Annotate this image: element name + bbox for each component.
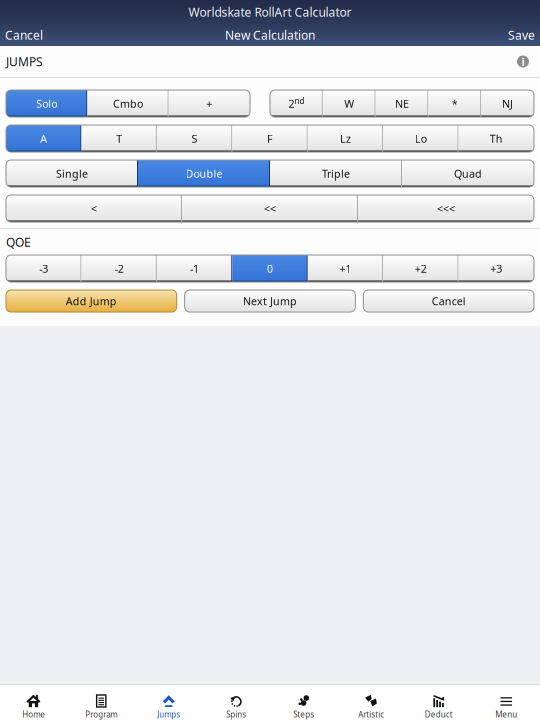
button[interactable]: Quad [402,160,534,187]
staticText: Save [508,27,535,43]
staticText: +3 [490,261,502,276]
button[interactable]: Add Jump [6,290,177,312]
staticText: S [192,131,198,146]
button[interactable]: Cmbo [87,90,169,117]
staticText: Quad [454,166,482,181]
staticText: W [344,96,354,111]
button[interactable]: Triple [270,160,402,187]
button[interactable]: Lo [383,125,458,152]
button[interactable]: T [81,125,157,152]
button[interactable]: Single [6,160,138,187]
button[interactable]: Lz [308,125,383,152]
button[interactable]: 2 [270,90,323,117]
staticText: -1 [190,261,199,276]
staticText: Lo [415,131,427,146]
staticText: Cmbo [113,96,143,111]
staticText: 2 [288,96,294,111]
staticText: +1 [339,261,351,276]
button[interactable]: Spins [202,685,270,720]
button[interactable]: 0 [232,255,308,282]
button[interactable]: <<< [358,195,534,222]
staticText: <<< [437,201,455,216]
staticText: Lz [340,131,351,146]
staticText: F [267,131,273,146]
staticText: Home [22,709,45,720]
button[interactable]: S [157,125,232,152]
button[interactable]: Program [67,685,135,720]
staticText: Jumps [157,709,180,720]
button[interactable]: Home [0,685,67,720]
staticText: Spins [226,709,246,720]
staticText: Triple [322,166,350,181]
staticText: Artistic [358,709,384,720]
button[interactable]: Cancel [0,25,48,45]
staticText: Steps [293,709,314,720]
staticText: nd [294,96,304,106]
staticText: Deduct [425,709,453,720]
staticText: A [40,131,47,146]
button[interactable]: NJ [481,90,534,117]
button[interactable]: Next Jump [185,290,355,312]
button[interactable]: Information [512,50,534,72]
button[interactable]: * [428,90,481,117]
button[interactable]: Cancel [363,290,534,312]
staticText: * [452,96,458,111]
button[interactable]: W [323,90,376,117]
staticText: -2 [115,261,124,276]
button[interactable]: Jumps [135,685,202,720]
button[interactable]: +3 [459,255,534,282]
button[interactable]: +1 [308,255,383,282]
button[interactable]: NE [376,90,428,117]
button[interactable]: + [169,90,250,117]
button[interactable]: Save [503,25,540,45]
button[interactable]: Menu [472,685,540,720]
staticText: < [91,201,97,216]
staticText: T [116,131,122,146]
staticText: NE [395,96,409,111]
staticText: Single [56,166,88,181]
staticText: NJ [502,96,513,111]
staticText: -3 [39,261,48,276]
staticText: << [264,201,276,216]
button[interactable]: Artistic [337,685,405,720]
staticText: 0 [267,261,273,276]
button[interactable]: -1 [157,255,232,282]
staticText: + [206,96,212,111]
staticText: Next Jump [243,294,297,308]
staticText: New Calculation [225,27,315,43]
button[interactable]: < [6,195,182,222]
staticText: Cancel [432,294,466,308]
button[interactable]: << [182,195,358,222]
button[interactable]: Steps [270,685,337,720]
staticText: Program [85,709,117,720]
button[interactable]: -2 [81,255,157,282]
staticText: Worldskate RollArt Calculator [188,4,351,20]
button[interactable]: +2 [383,255,458,282]
button[interactable]: Deduct [405,685,472,720]
staticText: i [521,54,524,69]
button[interactable]: -3 [6,255,81,282]
button[interactable]: F [232,125,308,152]
staticText: Double [185,166,222,181]
button[interactable]: A [6,125,81,152]
staticText: Solo [36,96,57,111]
staticText: Add Jump [66,294,117,308]
button[interactable]: Th [459,125,534,152]
button[interactable]: Double [138,160,270,187]
staticText: +2 [415,261,427,276]
button[interactable]: Solo [6,90,87,117]
staticText: QOE [6,234,31,250]
staticText: Menu [495,709,517,720]
staticText: JUMPS [6,53,43,69]
staticText: Cancel [5,27,43,43]
staticText: Th [490,131,503,146]
